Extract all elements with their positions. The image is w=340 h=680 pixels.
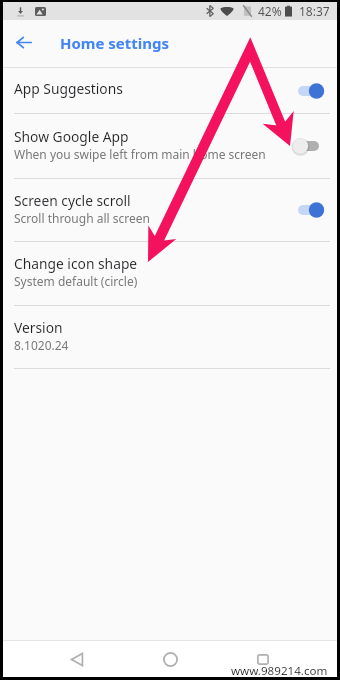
staticText: Home settings [60,33,170,53]
button[interactable]: Version [3,306,337,368]
staticText: 8.1020.24 [14,337,69,353]
staticText: Version [14,318,63,337]
staticText: 42% [258,3,282,19]
staticText: www.989214.com [231,663,328,679]
button[interactable]: Change icon shape [3,242,337,305]
button[interactable]: Toggle on [293,199,326,221]
staticText: Scroll through all screen [14,210,150,226]
button[interactable]: Back [65,647,89,671]
staticText: When you swipe left from main home scree… [14,146,266,162]
button[interactable]: Toggle off [293,135,326,157]
staticText: App Suggestions [14,79,123,98]
button[interactable]: Back [3,20,44,67]
button[interactable]: Show Google App [3,114,337,178]
button[interactable]: Home [158,647,182,671]
staticText: 18:37 [299,3,330,19]
staticText: Change icon shape [14,254,138,273]
button[interactable]: Recent apps [251,647,275,671]
button[interactable]: Screen cycle scroll [3,179,337,241]
staticText: Screen cycle scroll [14,191,131,210]
button[interactable]: App Suggestions [3,68,337,113]
button[interactable]: Toggle on [293,80,326,102]
staticText: System default (circle) [14,273,138,289]
staticText: Show Google App [14,127,129,146]
